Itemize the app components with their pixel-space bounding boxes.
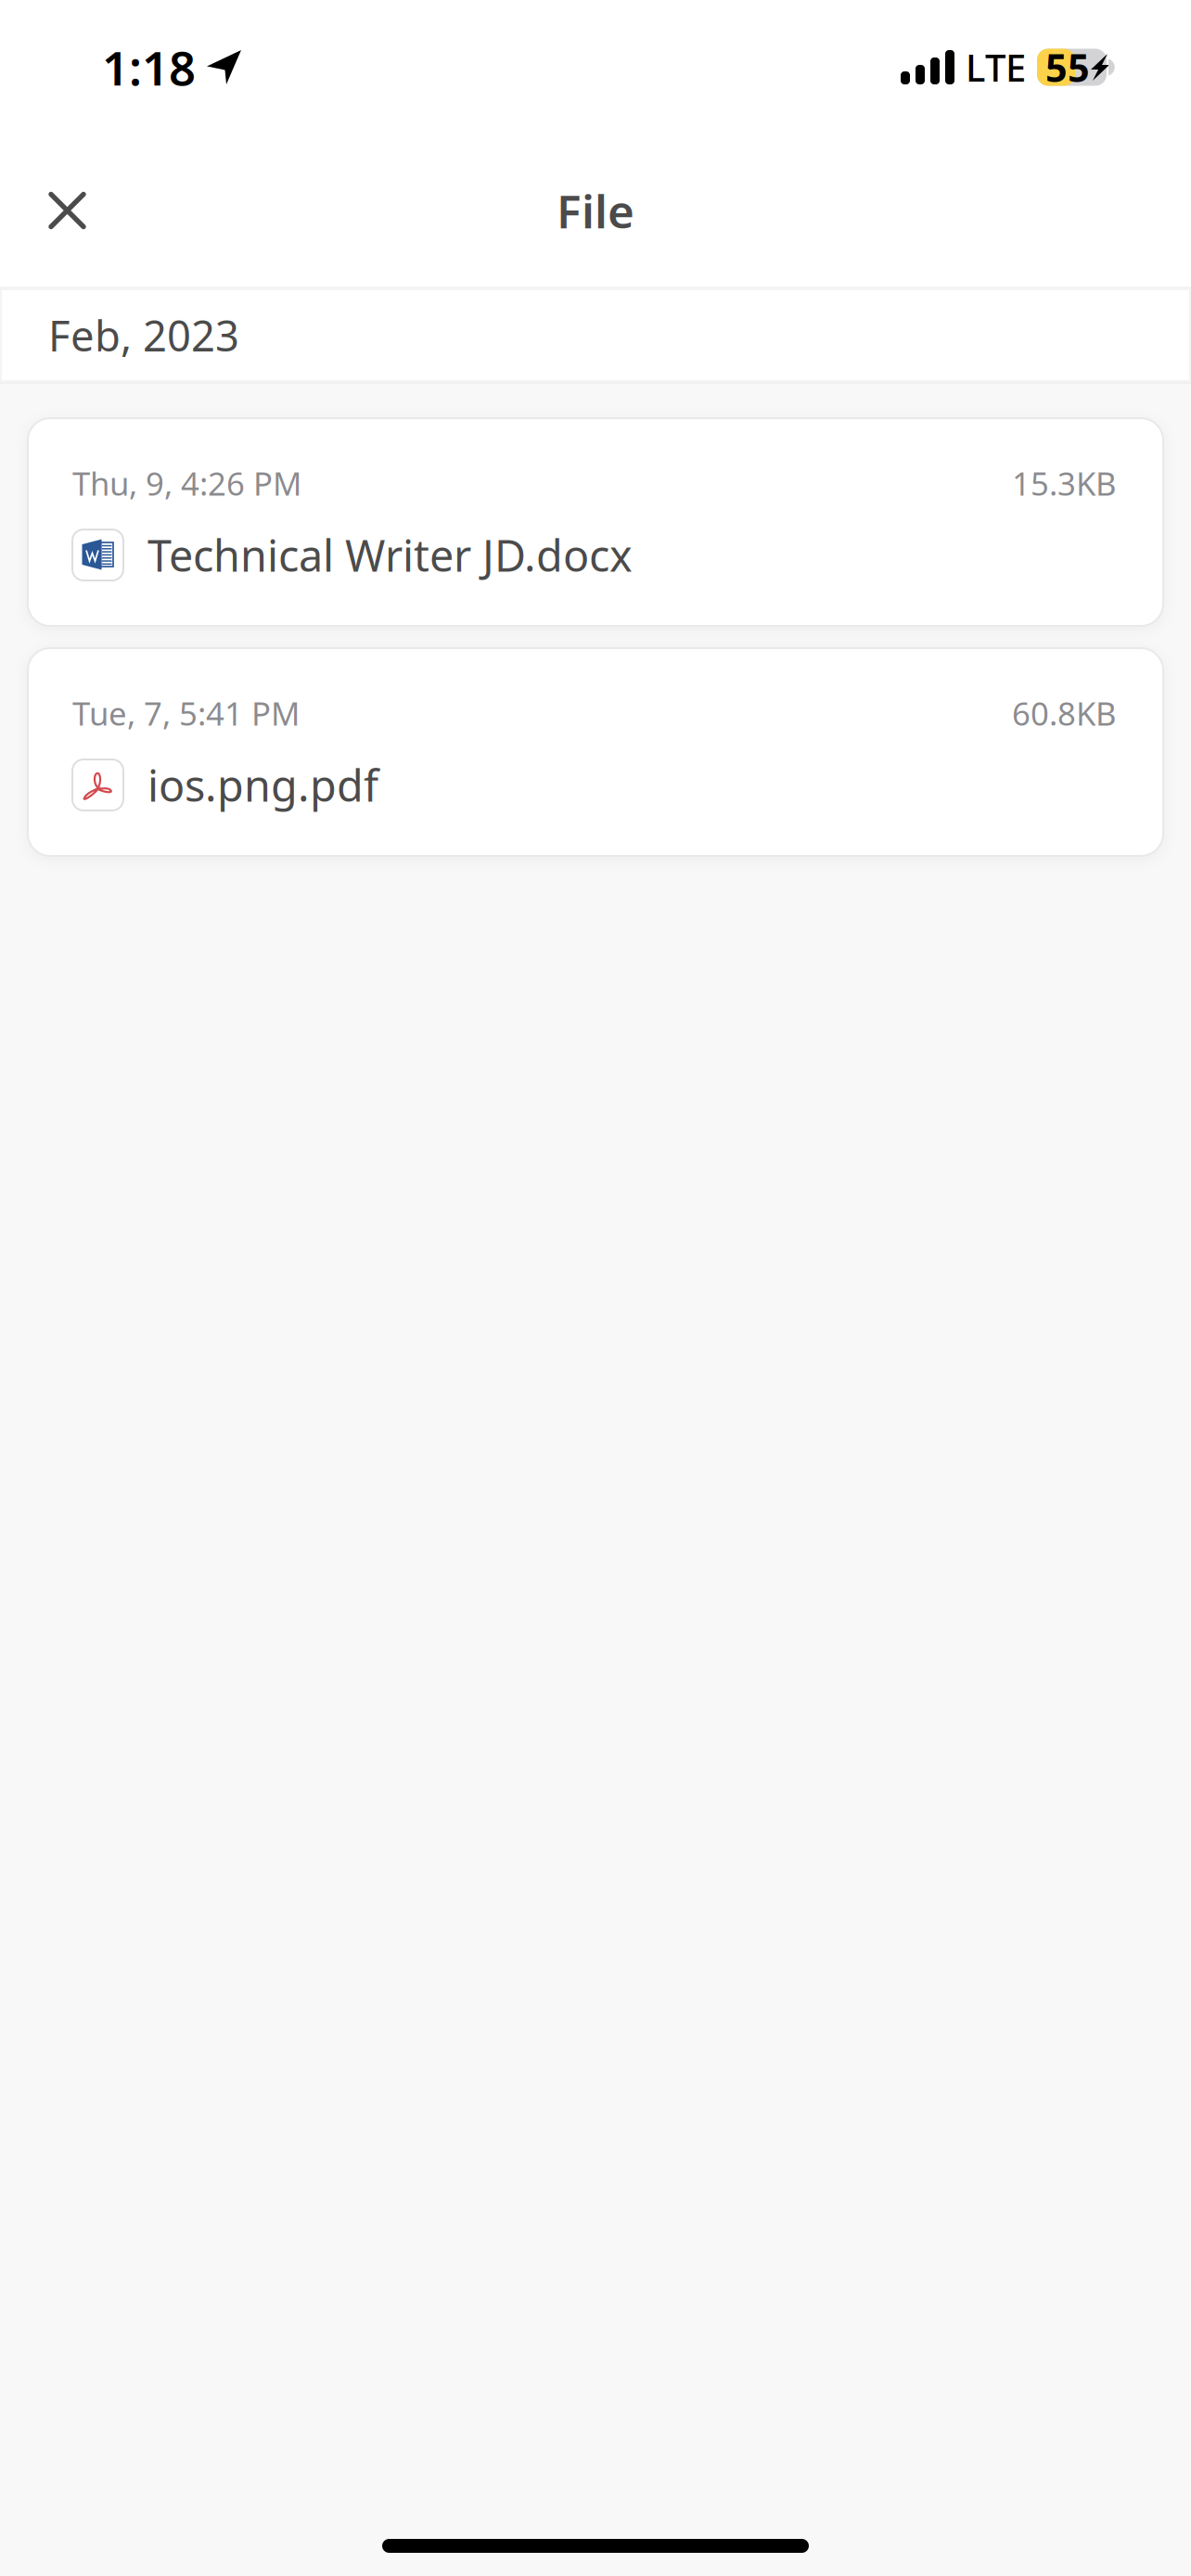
staticText: Technical Writer JD.docx [147, 526, 633, 584]
staticText: Tue, 7, 5:41 PM [72, 692, 300, 734]
staticText: LTE [966, 43, 1026, 92]
staticText: ios.png.pdf [147, 756, 378, 814]
staticText: 1:18 [102, 36, 196, 98]
button[interactable]: Close [0, 164, 123, 257]
staticText: Feb, 2023 [48, 307, 239, 363]
staticText: 55 [1045, 42, 1090, 93]
staticText: 60.8KB [1012, 692, 1117, 734]
staticText: 15.3KB [1012, 462, 1117, 504]
button[interactable]: Thu, 9, 4:26 PM [28, 418, 1163, 626]
button[interactable]: Tue, 7, 5:41 PM [28, 648, 1163, 856]
staticText: Thu, 9, 4:26 PM [72, 462, 301, 504]
staticText: File [557, 180, 634, 241]
